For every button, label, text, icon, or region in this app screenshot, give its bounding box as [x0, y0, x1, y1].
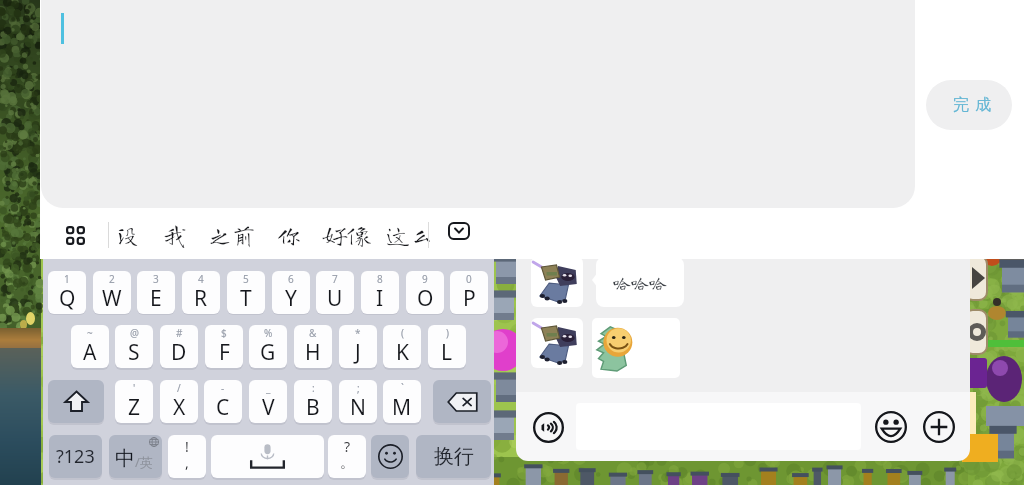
- staticText: /英: [135, 453, 153, 471]
- staticText: `: [401, 381, 404, 395]
- button[interactable]: Emoji: [875, 411, 907, 443]
- staticText: 你: [277, 223, 301, 247]
- button[interactable]: More options: [923, 411, 955, 443]
- button[interactable]: 3: [137, 271, 175, 314]
- button[interactable]: 之前: [204, 211, 260, 259]
- button[interactable]: ): [428, 325, 466, 368]
- button[interactable]: @: [115, 325, 153, 368]
- button[interactable]: Backspace: [433, 380, 491, 423]
- staticText: A: [83, 338, 97, 367]
- staticText: 好像: [323, 223, 371, 247]
- staticText: ?: [344, 437, 351, 456]
- staticText: K: [396, 338, 409, 367]
- button[interactable]: Hide keyboard: [445, 218, 473, 244]
- button[interactable]: 1: [48, 271, 86, 314]
- staticText: $: [221, 326, 227, 340]
- button[interactable]: Avatar: [531, 318, 583, 368]
- staticText: Z: [128, 393, 141, 422]
- button[interactable]: 6: [272, 271, 310, 314]
- staticText: !: [185, 437, 189, 456]
- button[interactable]: 8: [361, 271, 399, 314]
- staticText: E: [150, 284, 162, 313]
- staticText: J: [355, 338, 361, 367]
- button[interactable]: 你: [274, 211, 304, 259]
- button[interactable]: 5: [227, 271, 265, 314]
- button[interactable]: 这么: [382, 211, 438, 259]
- button[interactable]: *: [339, 325, 377, 368]
- staticText: _: [266, 381, 271, 395]
- button[interactable]: 4: [182, 271, 220, 314]
- staticText: 我: [163, 223, 187, 247]
- staticText: #: [176, 326, 183, 340]
- staticText: 1: [64, 272, 70, 286]
- button[interactable]: $: [205, 325, 243, 368]
- staticText: ,: [185, 453, 189, 472]
- staticText: R: [194, 284, 208, 313]
- staticText: F: [219, 338, 230, 367]
- staticText: W: [102, 284, 122, 313]
- button[interactable]: (: [383, 325, 421, 368]
- staticText: ): [446, 326, 449, 340]
- staticText: 3: [153, 272, 159, 286]
- staticText: O: [417, 284, 434, 313]
- button[interactable]: 换行: [416, 435, 491, 478]
- staticText: 中: [115, 446, 135, 471]
- button[interactable]: 我: [160, 211, 190, 259]
- button[interactable]: :: [294, 380, 332, 423]
- button[interactable]: -: [204, 380, 242, 423]
- staticText: -: [221, 381, 225, 395]
- button[interactable]: Keyboard layouts: [53, 211, 98, 259]
- button[interactable]: ': [115, 380, 153, 423]
- button[interactable]: ?: [328, 435, 366, 478]
- staticText: %: [264, 326, 273, 340]
- staticText: M: [392, 393, 412, 422]
- button[interactable]: [41, 0, 915, 208]
- button[interactable]: 没: [113, 211, 143, 259]
- staticText: H: [305, 338, 321, 367]
- button[interactable]: &: [294, 325, 332, 368]
- button[interactable]: 好像: [319, 211, 375, 259]
- button[interactable]: %: [249, 325, 287, 368]
- staticText: Y: [285, 284, 297, 313]
- staticText: 8: [377, 272, 383, 286]
- staticText: 9: [422, 272, 428, 286]
- button[interactable]: Chinese / English: [109, 435, 162, 478]
- button[interactable]: [592, 318, 680, 378]
- staticText: *: [355, 326, 361, 340]
- button[interactable]: 0: [450, 271, 488, 314]
- button[interactable]: Shift: [48, 380, 104, 423]
- button[interactable]: 7: [316, 271, 354, 314]
- button[interactable]: Voice message: [533, 412, 564, 443]
- button[interactable]: #: [160, 325, 198, 368]
- button[interactable]: Avatar: [531, 259, 583, 307]
- staticText: 4: [198, 272, 204, 286]
- button[interactable]: 2: [93, 271, 131, 314]
- staticText: D: [171, 338, 187, 367]
- button[interactable]: 9: [406, 271, 444, 314]
- staticText: L: [441, 338, 453, 367]
- staticText: V: [262, 393, 275, 422]
- staticText: G: [260, 338, 276, 367]
- button[interactable]: Space: [211, 435, 324, 478]
- button[interactable]: 哈哈哈: [596, 259, 684, 307]
- staticText: 哈哈哈: [613, 273, 667, 291]
- staticText: 换行: [434, 444, 474, 469]
- staticText: ;: [357, 381, 360, 395]
- staticText: ~: [87, 326, 93, 340]
- button[interactable]: 完成: [926, 80, 1012, 130]
- button[interactable]: Emoji: [371, 435, 409, 478]
- button[interactable]: _: [249, 380, 287, 423]
- staticText: 。: [340, 454, 354, 472]
- staticText: ?123: [56, 444, 95, 469]
- staticText: 2: [109, 272, 115, 286]
- button[interactable]: ;: [339, 380, 377, 423]
- staticText: 6: [288, 272, 294, 286]
- button[interactable]: !: [168, 435, 206, 478]
- button[interactable]: `: [383, 380, 421, 423]
- staticText: B: [306, 393, 320, 422]
- button[interactable]: ~: [71, 325, 109, 368]
- button[interactable]: ?123: [49, 435, 102, 478]
- button[interactable]: /: [160, 380, 198, 423]
- staticText: P: [463, 284, 476, 313]
